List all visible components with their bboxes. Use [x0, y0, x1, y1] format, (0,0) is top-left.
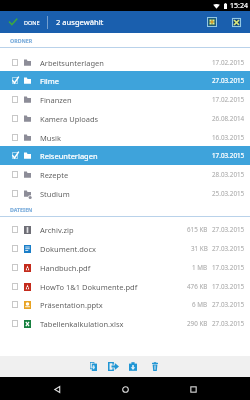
button[interactable]: Musik: [0, 128, 250, 147]
staticText: Filme: [40, 76, 60, 86]
staticText: 615 KB: [187, 225, 208, 234]
staticText: DATEIEN: [10, 206, 33, 213]
staticText: 15:24: [230, 1, 248, 11]
staticText: Studium: [40, 189, 70, 199]
button[interactable]: Tabellenkalkulation.xlsx: [0, 314, 250, 333]
staticText: 25.03.2015: [212, 189, 245, 198]
button[interactable]: Back: [46, 378, 68, 400]
button[interactable]: Reiseunterlagen: [0, 146, 250, 165]
staticText: Arbeitsunterlagen: [40, 58, 104, 68]
staticText: 27.03.2015: [212, 225, 245, 234]
button[interactable]: Download: [124, 358, 141, 375]
staticText: Finanzen: [40, 95, 72, 105]
staticText: HowTo 1&1 Dokumente.pdf: [40, 282, 138, 292]
button[interactable]: Studium: [0, 184, 250, 203]
staticText: 17.02.2015: [212, 95, 245, 104]
staticText: 26.08.2014: [212, 114, 245, 123]
staticText: 1 MB: [192, 263, 208, 272]
button[interactable]: HowTo 1&1 Dokumente.pdf: [0, 277, 250, 296]
staticText: 17.02.2015: [212, 58, 245, 67]
staticText: Archiv.zip: [40, 225, 74, 235]
staticText: ORDNER: [10, 37, 33, 44]
staticText: 476 KB: [187, 282, 208, 291]
staticText: 27.03.2015: [212, 244, 245, 253]
staticText: 17.03.2015: [212, 282, 245, 291]
staticText: Dokument.docx: [40, 244, 96, 254]
button[interactable]: Dokument.docx: [0, 239, 250, 258]
staticText: Rezepte: [40, 170, 69, 180]
staticText: 28.03.2015: [212, 170, 245, 179]
button[interactable]: Move: [105, 358, 122, 375]
button[interactable]: Arbeitsunterlagen: [0, 53, 250, 72]
staticText: Tabellenkalkulation.xlsx: [40, 319, 124, 329]
button[interactable]: Filme: [0, 71, 250, 90]
button[interactable]: Kamera Uploads: [0, 109, 250, 128]
button[interactable]: DONE: [0, 11, 47, 33]
staticText: Kamera Uploads: [40, 114, 99, 124]
staticText: 6 MB: [192, 300, 208, 309]
staticText: Handbuch.pdf: [40, 263, 91, 273]
button[interactable]: Handbuch.pdf: [0, 258, 250, 277]
button[interactable]: Select all: [199, 11, 224, 33]
staticText: 31 KB: [191, 244, 208, 253]
staticText: DONE: [24, 19, 40, 26]
staticText: 290 KB: [187, 319, 208, 328]
staticText: 17.03.2015: [212, 151, 245, 160]
button[interactable]: Delete: [146, 358, 163, 375]
staticText: 27.03.2015: [212, 319, 245, 328]
button[interactable]: Archiv.zip: [0, 220, 250, 239]
button[interactable]: Präsentation.pptx: [0, 295, 250, 314]
staticText: 27.03.2015: [212, 76, 245, 85]
button[interactable]: Home: [114, 378, 136, 400]
button[interactable]: Finanzen: [0, 90, 250, 109]
staticText: 2 ausgewählt: [56, 17, 104, 27]
button[interactable]: Copy: [85, 358, 102, 375]
button[interactable]: Rezepte: [0, 165, 250, 184]
button[interactable]: Recents: [182, 378, 204, 400]
staticText: 17.03.2015: [212, 263, 245, 272]
staticText: 27.03.2015: [212, 300, 245, 309]
staticText: 16.03.2015: [212, 133, 245, 142]
staticText: Musik: [40, 133, 61, 143]
button[interactable]: Deselect all: [224, 11, 249, 33]
staticText: Präsentation.pptx: [40, 300, 103, 310]
staticText: Reiseunterlagen: [40, 151, 98, 161]
